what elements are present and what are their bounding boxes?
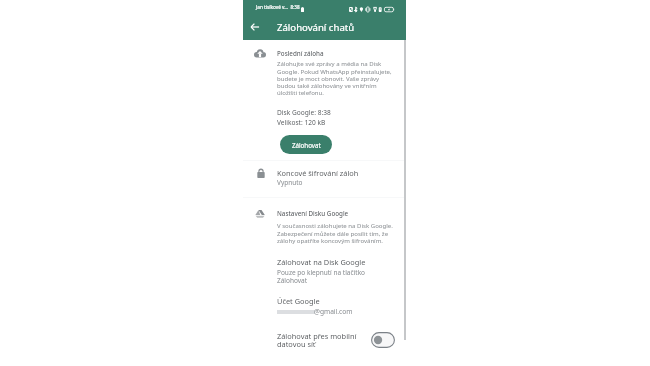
staticText: Koncové šifrování záloh [277,168,359,178]
staticText: Zálohovat na Disk Google [277,257,366,267]
staticText: Poslední záloha [277,49,324,58]
button[interactable]: Back [249,21,261,33]
staticText: Zálohovat přes mobilní datovou síť [277,331,367,350]
staticText: Nastavení Disku Google [277,209,349,218]
button[interactable]: Zálohovat [280,135,332,154]
staticText: Zálohovat [292,141,321,149]
staticText: Velikost: 120 kB [277,118,326,127]
staticText: Zálohujte své zprávy a média na Disk Goo… [277,60,397,96]
staticText: @gmail.com [314,307,353,316]
staticText: Účet Google [277,296,320,306]
staticText: Pouze po klepnutí na tlačítko Zálohovat [277,268,372,285]
staticText: V současnosti zálohujete na Disk Google.… [277,222,397,244]
button[interactable]: Zálohovat přes mobilní datovou síť toggl… [371,332,395,348]
button[interactable] [243,164,406,192]
staticText: Vypnuto [277,178,303,187]
staticText: Jan tisíkové v... 8:38 [256,4,300,10]
staticText: Disk Google: 8:38 [277,108,331,117]
staticText: Zálohování chatů [277,21,355,34]
